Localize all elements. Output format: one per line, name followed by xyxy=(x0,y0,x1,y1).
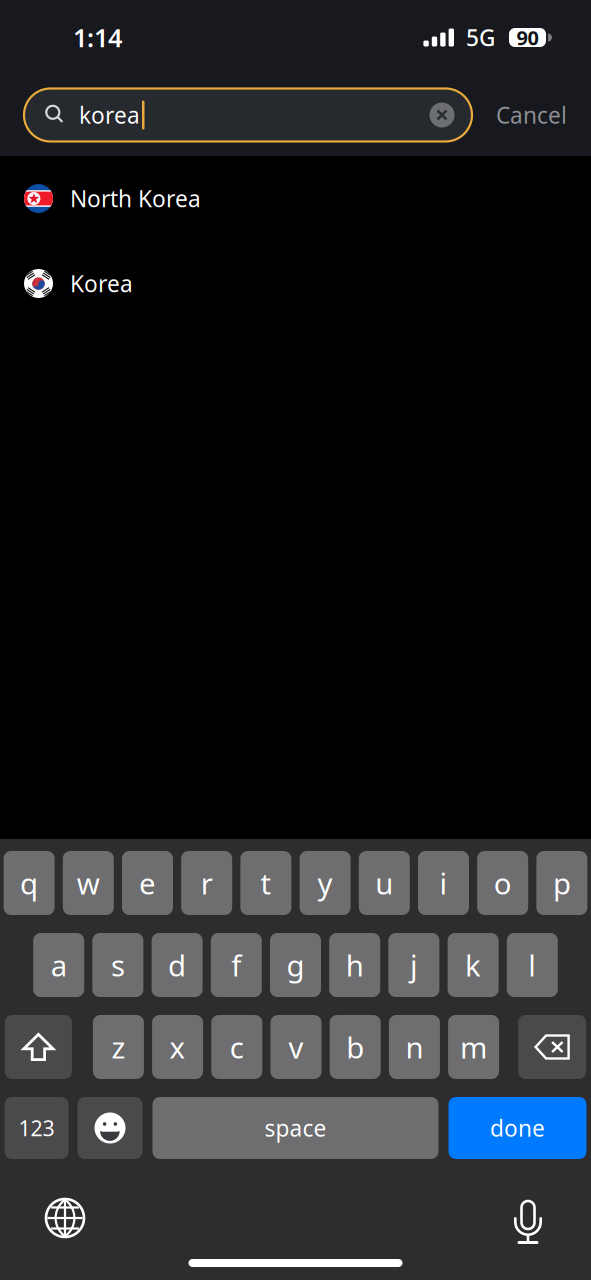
staticText: 5G xyxy=(466,22,495,52)
staticText: 123 xyxy=(18,1114,54,1142)
button[interactable]: v xyxy=(270,1015,321,1079)
button[interactable]: t xyxy=(240,851,291,915)
button[interactable]: Korea xyxy=(0,241,591,326)
staticText: y xyxy=(318,863,333,902)
staticText: r xyxy=(201,863,213,902)
button[interactable]: j xyxy=(388,933,439,997)
button[interactable]: space xyxy=(152,1097,438,1159)
staticText: Korea xyxy=(70,268,133,298)
button[interactable]: m xyxy=(448,1015,499,1079)
button[interactable]: n xyxy=(389,1015,440,1079)
button[interactable]: f xyxy=(211,933,262,997)
staticText: space xyxy=(264,1113,326,1143)
button[interactable]: b xyxy=(330,1015,381,1079)
button[interactable]: q xyxy=(4,851,55,915)
staticText: 1:14 xyxy=(73,21,122,54)
staticText: w xyxy=(77,863,100,902)
button[interactable]: i xyxy=(418,851,469,915)
button[interactable]: e xyxy=(122,851,173,915)
staticText: z xyxy=(111,1027,125,1066)
staticText: North Korea xyxy=(70,183,201,213)
button[interactable]: Shift xyxy=(5,1015,72,1079)
button[interactable]: k xyxy=(448,933,499,997)
button[interactable]: x xyxy=(152,1015,203,1079)
staticText: m xyxy=(460,1027,487,1066)
staticText: done xyxy=(490,1113,545,1143)
staticText: f xyxy=(231,945,241,984)
button[interactable]: y xyxy=(300,851,351,915)
button[interactable]: a xyxy=(33,933,84,997)
button[interactable]: d xyxy=(152,933,203,997)
button[interactable]: u xyxy=(359,851,410,915)
staticText: x xyxy=(170,1027,186,1066)
staticText: Cancel xyxy=(496,100,567,130)
staticText: b xyxy=(346,1027,364,1066)
button[interactable]: North Korea xyxy=(0,156,591,241)
button[interactable]: l xyxy=(507,933,558,997)
staticText: a xyxy=(51,945,67,984)
button[interactable]: Dictation xyxy=(514,1198,542,1242)
staticText: e xyxy=(139,863,156,902)
button[interactable]: Cancel xyxy=(472,88,591,141)
button[interactable]: Change keyboard xyxy=(45,1198,85,1238)
staticText: k xyxy=(465,945,481,984)
button[interactable]: h xyxy=(329,933,380,997)
button[interactable]: korea xyxy=(24,88,472,141)
button[interactable]: r xyxy=(181,851,232,915)
staticText: o xyxy=(494,863,512,902)
staticText: g xyxy=(286,945,304,984)
staticText: n xyxy=(405,1027,423,1066)
button[interactable]: s xyxy=(92,933,143,997)
button[interactable]: w xyxy=(63,851,114,915)
staticText: t xyxy=(260,863,271,902)
staticText: l xyxy=(528,945,536,984)
button[interactable]: done xyxy=(448,1097,586,1159)
button[interactable]: Delete xyxy=(518,1015,586,1079)
staticText: c xyxy=(230,1027,244,1066)
staticText: korea xyxy=(79,100,140,130)
button[interactable]: z xyxy=(93,1015,144,1079)
button[interactable]: c xyxy=(211,1015,262,1079)
button[interactable]: Emoji xyxy=(77,1097,142,1159)
button[interactable]: o xyxy=(477,851,528,915)
button[interactable]: 123 xyxy=(4,1097,68,1159)
staticText: p xyxy=(553,863,571,902)
staticText: q xyxy=(20,863,38,902)
button[interactable]: g xyxy=(270,933,321,997)
staticText: h xyxy=(346,945,364,984)
staticText: d xyxy=(168,945,186,984)
staticText: 90 xyxy=(516,24,538,51)
staticText: i xyxy=(439,863,447,902)
staticText: j xyxy=(410,945,418,984)
button[interactable]: p xyxy=(536,851,587,915)
staticText: v xyxy=(288,1027,303,1066)
staticText: u xyxy=(375,863,393,902)
staticText: s xyxy=(111,945,125,984)
